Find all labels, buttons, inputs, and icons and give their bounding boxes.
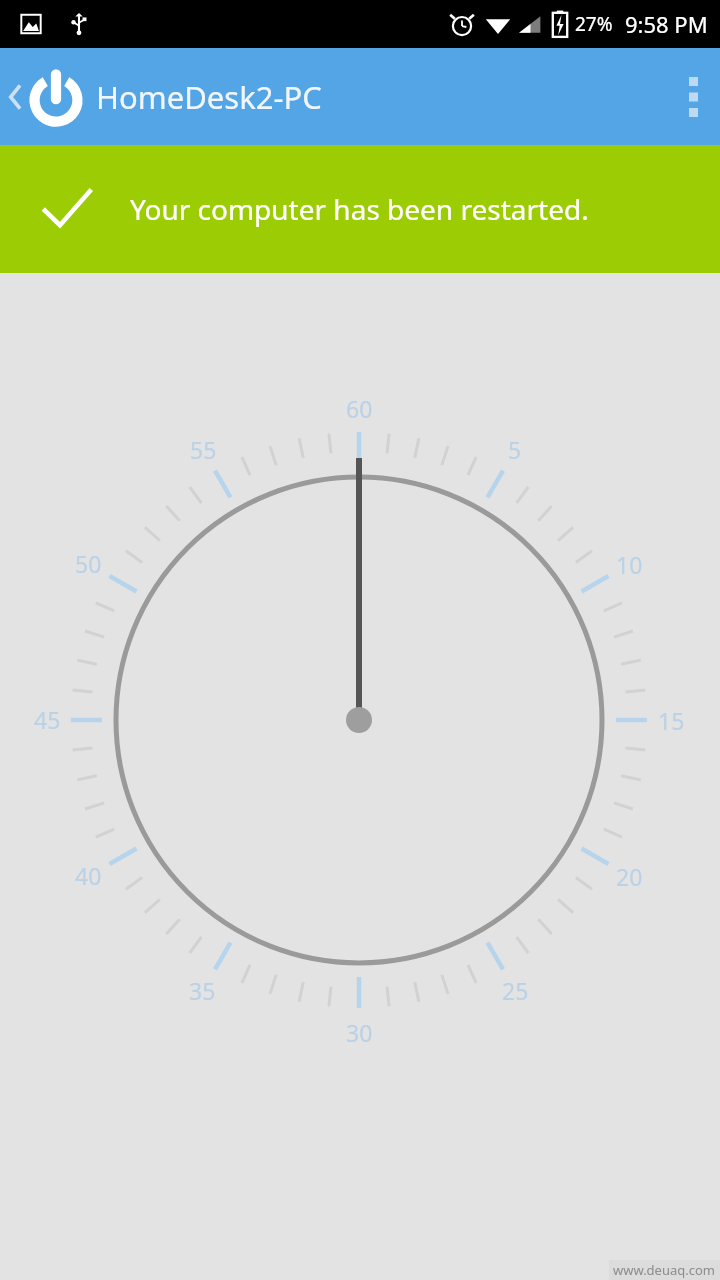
button[interactable]: More options xyxy=(667,59,720,135)
staticText: 40 xyxy=(75,860,102,891)
staticText: 9:58 PM xyxy=(625,9,708,39)
button[interactable]: Navigate up xyxy=(0,57,332,137)
staticText: 50 xyxy=(75,548,102,579)
staticText: 15 xyxy=(658,705,685,736)
staticText: 27% xyxy=(575,11,613,37)
staticText: Your computer has been restarted. xyxy=(130,190,589,228)
staticText: 25 xyxy=(502,975,529,1006)
staticText: 20 xyxy=(616,861,643,892)
staticText: 35 xyxy=(189,975,216,1006)
staticText: 55 xyxy=(190,434,217,465)
staticText: HomeDesk2-PC xyxy=(96,76,322,118)
staticText: 45 xyxy=(34,704,61,735)
staticText: 30 xyxy=(346,1017,373,1048)
other: Navigate up xyxy=(6,80,24,114)
staticText: 60 xyxy=(346,393,373,424)
staticText: 5 xyxy=(508,434,522,465)
staticText: www.deuaq.com xyxy=(613,1261,716,1279)
button[interactable]: Your computer has been restarted. xyxy=(0,145,720,273)
staticText: 10 xyxy=(616,549,643,580)
